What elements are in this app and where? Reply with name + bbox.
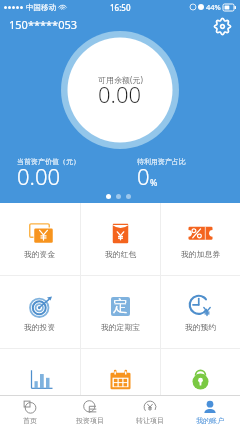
staticText: 16:50 (110, 2, 131, 13)
staticText: 我的收益 (24, 395, 56, 405)
staticText: % (150, 176, 158, 188)
staticText: 0.00 (17, 161, 61, 191)
staticText: 转让项目 (136, 416, 164, 425)
button[interactable]: 投资项目 (60, 396, 120, 427)
staticText: 中国移动 (26, 3, 56, 12)
button[interactable]: 我的加息券 (161, 203, 240, 275)
staticText: 44% (206, 2, 221, 12)
staticText: 我的账户 (196, 416, 224, 425)
button[interactable]: 转让项目 (120, 396, 180, 427)
button[interactable]: 我的日历 (81, 349, 160, 421)
staticText: 安全中心 (185, 395, 217, 405)
button[interactable]: Settings (212, 16, 232, 36)
staticText: 我的预约 (185, 322, 217, 332)
button[interactable]: 我的红包 (81, 203, 160, 275)
button[interactable]: 定 (81, 276, 160, 348)
staticText: 150*****053 (9, 17, 78, 32)
button[interactable]: 首页 (0, 396, 60, 427)
button[interactable]: 我的收益 (0, 349, 80, 421)
staticText: 定 (113, 297, 128, 316)
staticText: 我的定期宝 (101, 322, 140, 332)
staticText: 我的日历 (105, 395, 137, 405)
staticText: 我的投资 (24, 322, 56, 332)
staticText: 我的加息券 (181, 249, 220, 259)
button[interactable]: 安全中心 (161, 349, 240, 421)
staticText: 0.00 (98, 79, 142, 109)
staticText: 我的红包 (105, 249, 137, 259)
button[interactable]: 我的资金 (0, 203, 80, 275)
staticText: 投资项目 (76, 416, 104, 425)
button[interactable]: 我的投资 (0, 276, 80, 348)
button[interactable]: 我的预约 (161, 276, 240, 348)
staticText: 首页 (23, 416, 37, 425)
staticText: 我的资金 (24, 249, 56, 259)
staticText: 可用余额(元) (98, 74, 143, 85)
staticText: 待利用资产占比 (137, 157, 186, 166)
staticText: 当前资产价值（元） (17, 157, 80, 166)
staticText: 0 (137, 161, 150, 191)
button[interactable]: 我的账户 (180, 396, 240, 427)
